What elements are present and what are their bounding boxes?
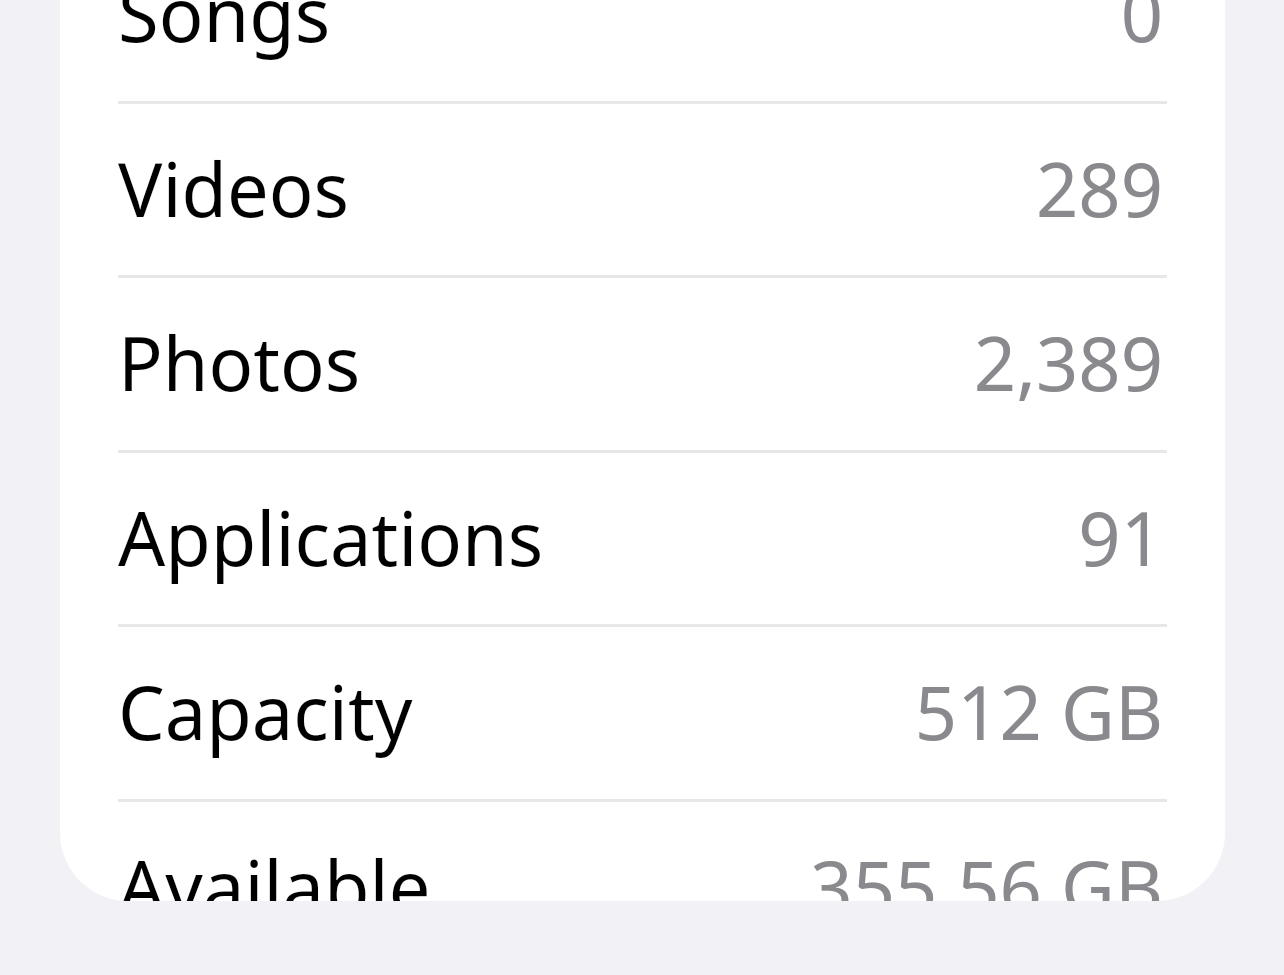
button[interactable]: Songs	[60, 0, 1225, 101]
staticText: 0	[1120, 0, 1163, 64]
staticText: Capacity	[118, 661, 413, 762]
staticText: Available	[118, 836, 431, 901]
staticText: 2,389	[973, 312, 1163, 413]
staticText: Songs	[118, 0, 331, 64]
staticText: 91	[1078, 487, 1163, 588]
button[interactable]: Available	[60, 799, 1225, 901]
staticText: Videos	[118, 138, 349, 239]
staticText: 355.56 GB	[810, 836, 1163, 901]
button[interactable]: Applications	[60, 450, 1225, 625]
button[interactable]: Videos	[60, 101, 1225, 276]
staticText: 512 GB	[914, 661, 1163, 762]
staticText: 289	[1036, 138, 1163, 239]
button[interactable]: Capacity	[60, 624, 1225, 799]
staticText: Photos	[118, 312, 361, 413]
button[interactable]: Photos	[60, 275, 1225, 450]
staticText: Applications	[118, 487, 544, 588]
